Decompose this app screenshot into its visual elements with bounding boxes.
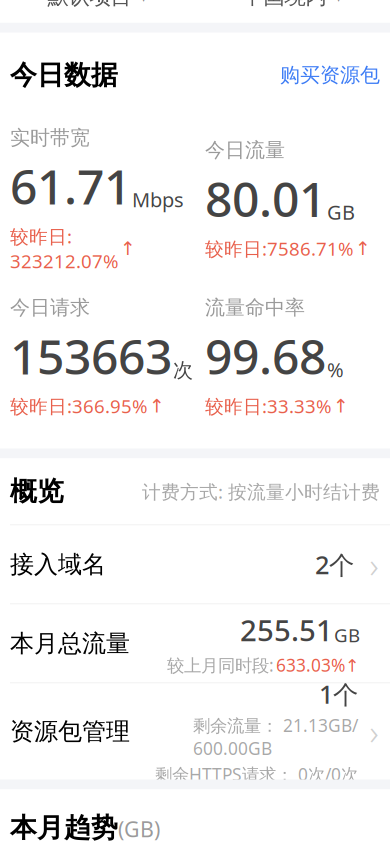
staticText: 剩余HTTPS请求： 0次/0次 [155, 763, 358, 786]
staticText: 购买资源包 [280, 63, 380, 87]
staticText: 实时带宽 [10, 125, 90, 150]
staticText: 153663 [10, 324, 172, 388]
staticText: 概览 [10, 475, 64, 508]
staticText: GB [334, 623, 360, 647]
staticText: 255.51 [240, 610, 333, 649]
button[interactable]: 资源包管理 [0, 683, 390, 779]
staticText: › [369, 708, 378, 754]
staticText: 80.01 [205, 166, 326, 230]
staticText: 61.71 [10, 154, 131, 218]
staticText: 较昨日:7586.71% [205, 236, 354, 261]
staticText: 本月总流量 [10, 629, 130, 658]
staticText: 资源包管理 [10, 717, 130, 746]
staticText: 计费方式: 按流量小时结计费 [142, 479, 380, 504]
staticText: % [327, 356, 344, 383]
staticText: ▼ [334, 0, 342, 3]
button[interactable]: 购买资源包 [280, 63, 380, 87]
staticText: 默认项目 [47, 0, 131, 10]
staticText: 今日数据 [10, 59, 118, 92]
staticText: ▼ [139, 0, 147, 3]
button[interactable]: 中国境内 [195, 0, 390, 19]
staticText: 中国境内 [242, 0, 326, 10]
button[interactable]: 本月总流量 [0, 604, 390, 682]
staticText: ↑ [355, 238, 371, 259]
staticText: 流量命中率 [205, 295, 305, 320]
staticText: 较昨日:366.95% [10, 394, 148, 418]
staticText: ↑ [333, 395, 349, 417]
staticText: 较上月同时段: [167, 653, 274, 676]
staticText: GB [327, 199, 355, 225]
staticText: 接入域名 [10, 550, 106, 579]
staticText: Mbps [132, 186, 184, 213]
staticText: ↑ [149, 395, 165, 417]
staticText: 次 [173, 358, 193, 383]
staticText: (GB) [118, 815, 160, 843]
staticText: 633.03%↑ [276, 653, 360, 676]
staticText: 今日流量 [205, 138, 285, 162]
staticText: › [369, 541, 378, 587]
staticText: 99.68 [205, 324, 326, 388]
staticText: 较昨日:323212.07% [10, 224, 119, 273]
button[interactable]: 接入域名 [0, 525, 390, 603]
button[interactable]: 默认项目 [0, 0, 195, 19]
staticText: ↑ [120, 238, 136, 259]
staticText: 较昨日:33.33% [205, 394, 332, 418]
staticText: 剩余流量： 21.13GB/600.00GB [193, 714, 358, 760]
staticText: 今日请求 [10, 295, 90, 320]
staticText: 本月趋势 [10, 811, 118, 844]
staticText: 2个 [315, 548, 354, 581]
staticText: 1个 [319, 677, 358, 711]
